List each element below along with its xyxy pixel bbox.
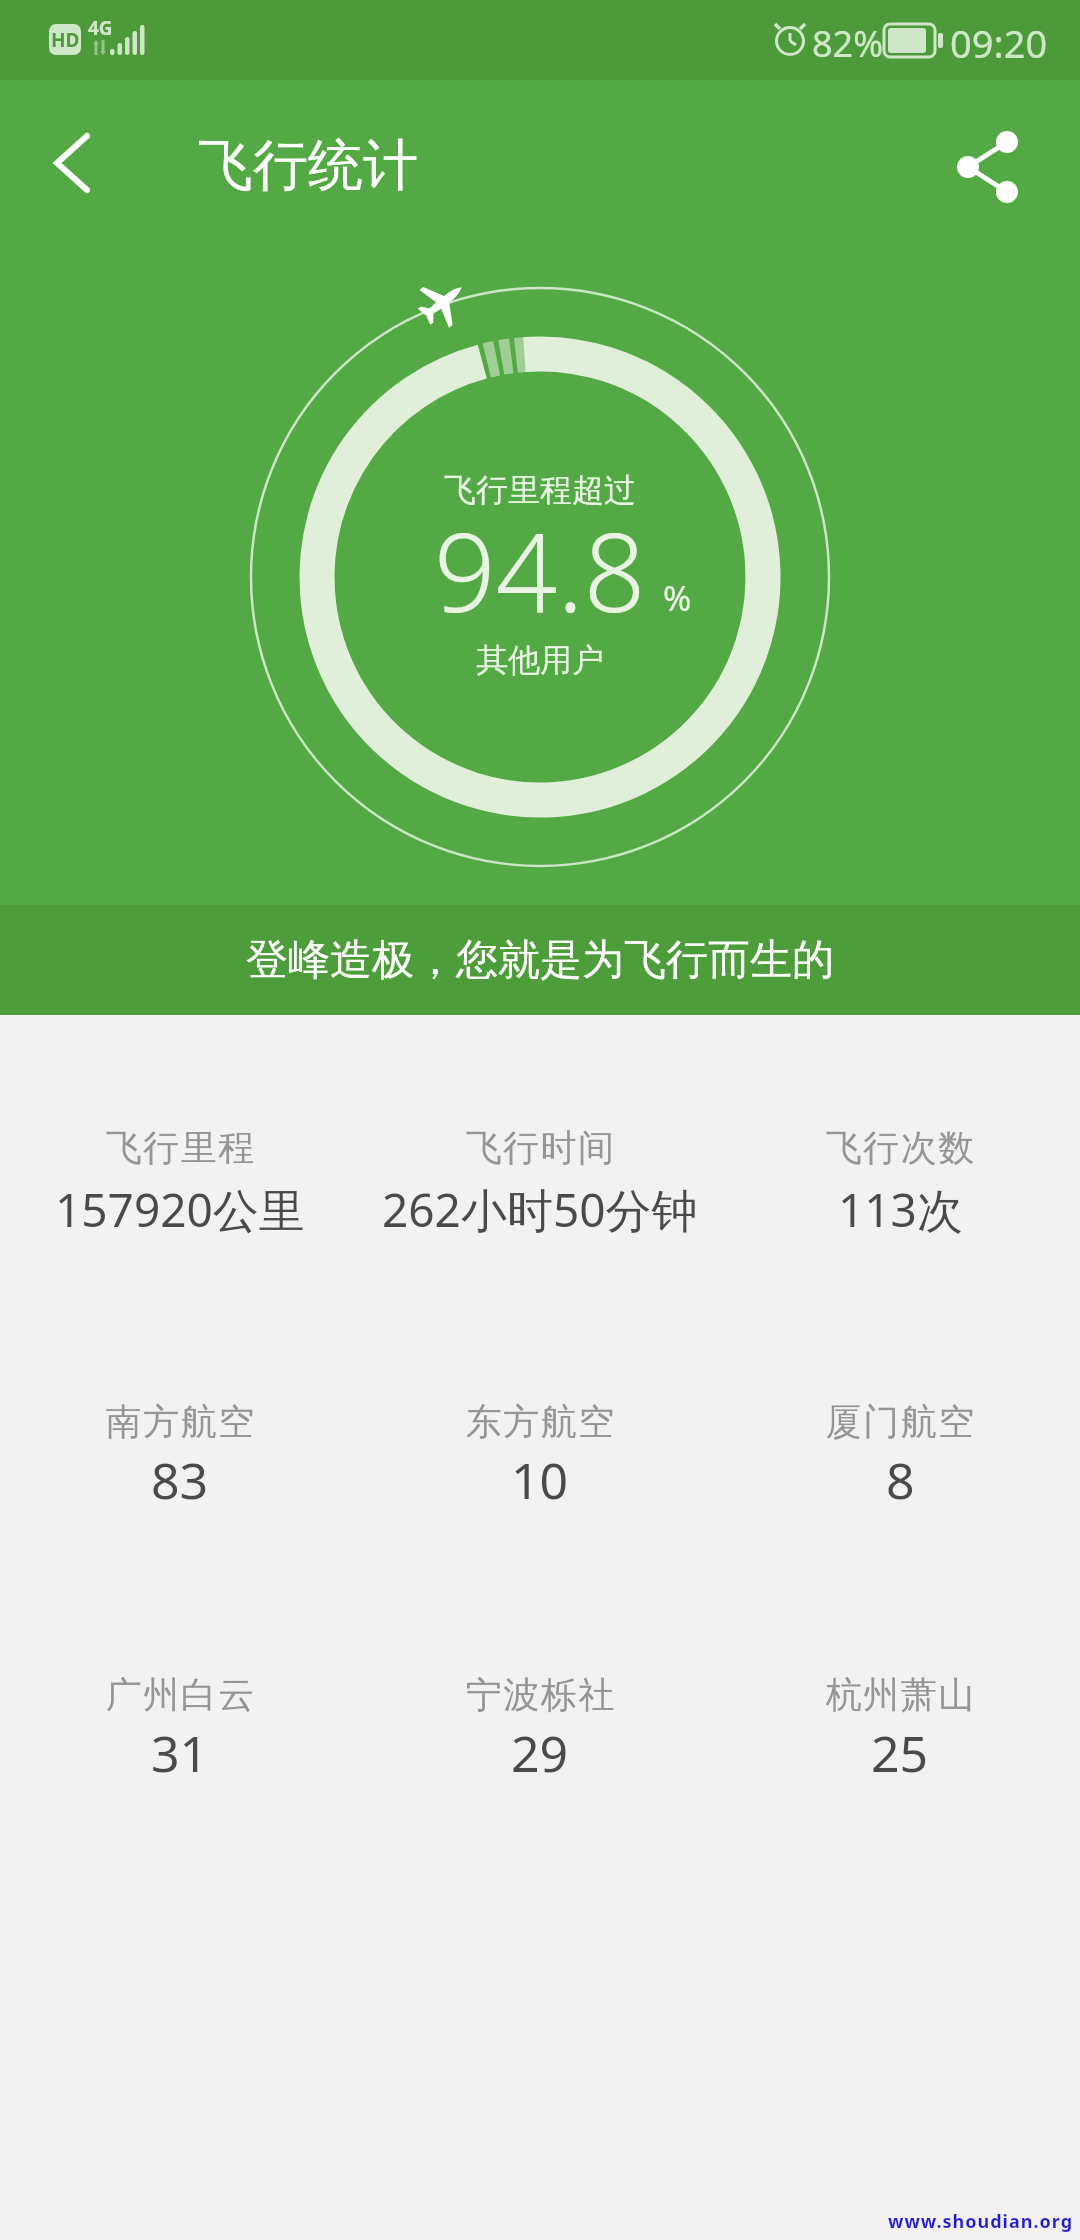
button[interactable] [940, 110, 1045, 215]
staticText: 94.8 [434, 497, 646, 644]
staticText: 25 [871, 1719, 929, 1787]
staticText: 广州白云 [105, 1672, 255, 1717]
staticText: 飞行里程 [105, 1125, 255, 1170]
staticText: 8 [886, 1446, 915, 1514]
staticText: 09:20 [950, 17, 1048, 69]
staticText: 262小时50分钟 [382, 1178, 698, 1241]
staticText: 宁波栎社 [465, 1672, 615, 1717]
staticText: 82% [812, 19, 884, 68]
staticText: www.shoudian.org [888, 2209, 1074, 2234]
staticText: 29 [511, 1719, 569, 1787]
button[interactable] [30, 110, 120, 215]
staticText: 31 [151, 1719, 209, 1787]
staticText: 113次 [838, 1178, 963, 1241]
staticText: 飞行次数 [825, 1125, 975, 1170]
staticText: 4G [88, 15, 113, 41]
staticText: 飞行时间 [465, 1125, 615, 1170]
staticText: 东方航空 [465, 1399, 615, 1444]
staticText: 厦门航空 [825, 1399, 975, 1444]
staticText: 飞行统计 [198, 131, 418, 200]
staticText: 83 [151, 1446, 209, 1514]
staticText: 登峰造极，您就是为飞行而生的 [246, 934, 834, 987]
staticText: 杭州萧山 [825, 1672, 975, 1717]
staticText: 10 [511, 1446, 569, 1514]
staticText: 157920公里 [55, 1178, 305, 1241]
staticText: HD [51, 27, 80, 53]
staticText: 其他用户 [476, 640, 604, 680]
staticText: 南方航空 [105, 1399, 255, 1444]
staticText: 飞行里程超过 [444, 470, 636, 510]
staticText: % [663, 575, 692, 621]
